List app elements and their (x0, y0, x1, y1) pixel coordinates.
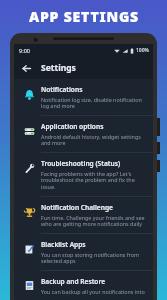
staticText: 9:00 (19, 47, 30, 54)
button[interactable]: Notifications (14, 79, 153, 115)
button[interactable]: Application options (14, 116, 153, 152)
staticText: Blacklist Apps (41, 240, 86, 249)
staticText: You can stop storing notifications from … (41, 251, 147, 265)
staticText: Facing problems with the app? Let's trou… (41, 170, 147, 191)
staticText: Notification log size, disable notificat… (41, 96, 147, 110)
button[interactable]: Blacklist Apps (14, 234, 153, 270)
button[interactable]: Backup and Restore (14, 271, 153, 300)
staticText: Settings (41, 62, 76, 74)
staticText: Android default history, widget settings… (41, 133, 147, 147)
button[interactable]: Notification Challenge (14, 197, 153, 233)
staticText: Backup and Restore (41, 277, 106, 286)
staticText: Troubleshooting (Status) (41, 159, 121, 168)
staticText: 100% (136, 47, 149, 54)
button[interactable]: Back (18, 60, 34, 76)
staticText: APP SETTINGS (29, 7, 139, 26)
staticText: Notification Challenge (41, 203, 113, 212)
staticText: Fun time. Challenge your friends and see… (41, 214, 147, 228)
staticText: Application options (41, 122, 104, 131)
staticText: You can backup all your notifications in… (41, 288, 147, 295)
staticText: Notifications (41, 85, 83, 94)
button[interactable]: Troubleshooting (Status) (14, 153, 153, 196)
